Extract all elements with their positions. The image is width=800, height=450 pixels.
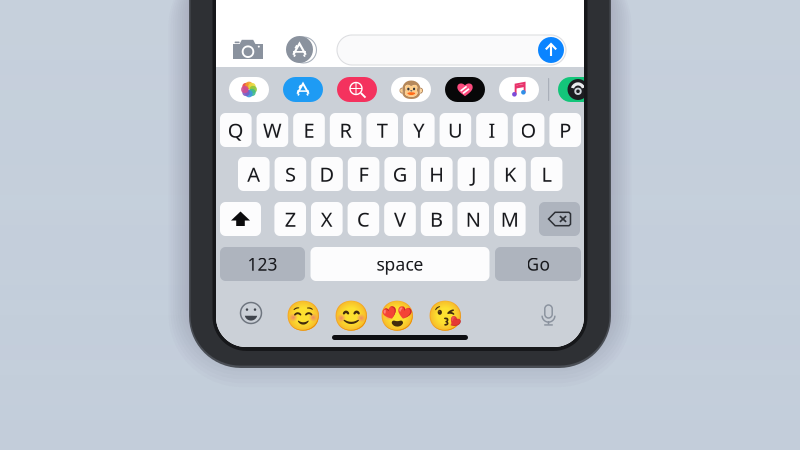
button[interactable]: Digital Touch — [445, 77, 485, 102]
button[interactable]: N — [457, 202, 489, 236]
button[interactable]: A — [238, 157, 270, 191]
staticText: K — [504, 161, 516, 187]
staticText: O — [521, 117, 537, 143]
button[interactable]: M — [494, 202, 526, 236]
button[interactable]: Relieved face — [290, 303, 316, 329]
staticText: E — [303, 117, 314, 143]
button[interactable]: Kiss — [432, 303, 458, 329]
button[interactable]: K — [494, 157, 526, 191]
staticText: Z — [285, 206, 296, 232]
button[interactable]: Smiling face — [338, 303, 364, 329]
button[interactable]: More apps — [558, 77, 598, 102]
staticText: T — [377, 117, 388, 143]
button[interactable]: U — [440, 113, 471, 147]
button[interactable]: Heart eyes — [384, 303, 410, 329]
staticText: A — [247, 161, 260, 187]
staticText: Go — [526, 252, 549, 275]
button[interactable]: App Store — [283, 77, 323, 102]
button[interactable]: B — [421, 202, 452, 236]
button[interactable]: X — [311, 202, 343, 236]
button[interactable]: App Store — [286, 36, 318, 63]
button[interactable]: W — [257, 113, 288, 147]
staticText: F — [359, 161, 369, 187]
button[interactable]: 123 — [220, 247, 305, 281]
button[interactable]: V — [384, 202, 416, 236]
button[interactable]: Go — [495, 247, 581, 281]
staticText: Y — [413, 117, 424, 143]
staticText: G — [393, 161, 408, 187]
button[interactable]: C — [348, 202, 379, 236]
staticText: 😘 — [426, 299, 463, 333]
button[interactable]: Y — [403, 113, 435, 147]
staticText: 😍 — [378, 299, 415, 333]
button[interactable]: space — [310, 247, 489, 281]
staticText: S — [285, 161, 296, 187]
staticText: N — [466, 206, 481, 232]
staticText: C — [357, 206, 370, 232]
staticText: 123 — [247, 252, 277, 275]
button[interactable]: I — [476, 113, 508, 147]
staticText: 🐵 — [397, 77, 424, 102]
button[interactable]: O — [513, 113, 544, 147]
staticText: 😊 — [332, 299, 369, 333]
button[interactable]: J — [458, 157, 489, 191]
button[interactable]: Delete — [539, 202, 580, 236]
staticText: P — [559, 117, 571, 143]
button[interactable]: E — [293, 113, 325, 147]
button[interactable]: Emoji keyboard — [240, 302, 261, 323]
staticText: ☺️ — [284, 299, 321, 333]
staticText: D — [319, 161, 334, 187]
staticText: X — [321, 206, 333, 232]
staticText: R — [340, 117, 352, 143]
staticText: V — [394, 206, 406, 232]
button[interactable]: Dictate — [541, 301, 556, 322]
button[interactable]: Z — [274, 202, 306, 236]
button[interactable]: Camera — [233, 39, 263, 59]
button[interactable]: D — [311, 157, 343, 191]
staticText: L — [542, 161, 552, 187]
button[interactable]: F — [348, 157, 379, 191]
button[interactable]: P — [549, 113, 581, 147]
staticText: W — [263, 117, 282, 143]
button[interactable]: H — [421, 157, 453, 191]
button[interactable]: Music — [499, 77, 539, 102]
button[interactable]: Image Search — [337, 77, 377, 102]
button[interactable]: Q — [220, 113, 252, 147]
button[interactable]: R — [330, 113, 361, 147]
staticText: B — [430, 206, 443, 232]
button[interactable]: T — [366, 113, 398, 147]
staticText: J — [471, 161, 476, 187]
staticText: I — [488, 117, 495, 143]
staticText: U — [448, 117, 463, 143]
button[interactable]: S — [275, 157, 306, 191]
button[interactable]: G — [384, 157, 416, 191]
button[interactable]: L — [531, 157, 562, 191]
staticText: Q — [228, 117, 244, 143]
button[interactable]: Send — [538, 37, 564, 63]
staticText: M — [501, 206, 519, 232]
button[interactable]: Photos — [229, 77, 269, 102]
staticText: H — [429, 161, 444, 187]
button[interactable]: Shift — [220, 202, 261, 236]
button[interactable]: Memoji — [391, 77, 431, 102]
staticText: space — [376, 252, 423, 275]
